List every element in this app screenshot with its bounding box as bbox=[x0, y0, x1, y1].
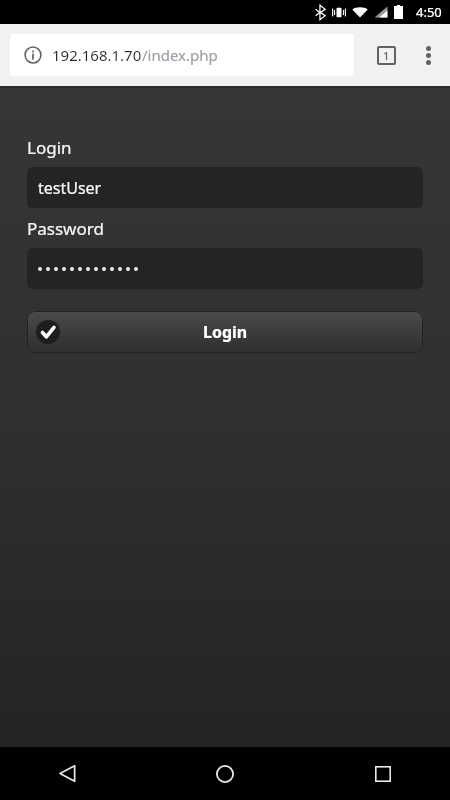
staticText: Login bbox=[203, 321, 248, 343]
button[interactable]: Login bbox=[27, 311, 423, 353]
button[interactable] bbox=[27, 248, 423, 289]
staticText: 1 bbox=[383, 48, 390, 63]
button[interactable]: Tabs bbox=[366, 35, 406, 75]
staticText: Login bbox=[27, 136, 72, 159]
staticText: 192.168.1.70 bbox=[52, 45, 142, 65]
staticText: testUser bbox=[38, 177, 102, 199]
button[interactable]: Home bbox=[198, 747, 252, 800]
button[interactable]: Back bbox=[40, 747, 94, 800]
staticText: 4:50 bbox=[416, 3, 442, 21]
staticText: Password bbox=[27, 217, 104, 240]
button[interactable]: More options bbox=[406, 33, 450, 77]
button[interactable]: testUser bbox=[27, 167, 423, 208]
staticText: /index.php bbox=[142, 45, 218, 65]
button[interactable]: 192.168.1.70 bbox=[10, 34, 354, 76]
button[interactable]: Recent apps bbox=[356, 747, 410, 800]
